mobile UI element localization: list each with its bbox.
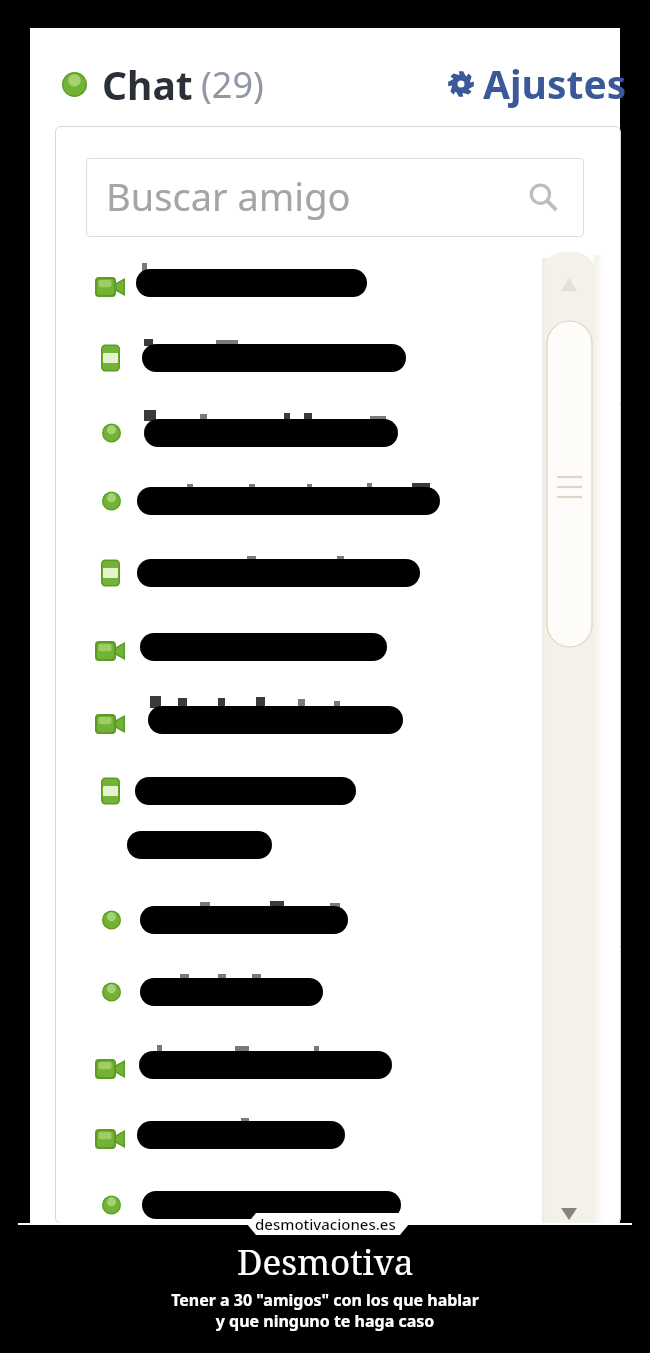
staticText: Tener a 30 "amigos" con los que hablar y…: [171, 1289, 479, 1332]
button[interactable]: Chat 1: [88, 247, 528, 309]
button[interactable]: Chat 8: [88, 755, 528, 817]
button[interactable]: Chat 12: [88, 1029, 528, 1091]
button[interactable]: Chat 14: [88, 1169, 528, 1231]
staticText: Chat: [102, 58, 193, 111]
button[interactable]: Buscar amigo: [86, 158, 584, 237]
staticText: desmotivaciones.es: [255, 1214, 396, 1234]
button[interactable]: Chat 13: [88, 1099, 528, 1161]
button[interactable]: Chat 11: [88, 956, 528, 1018]
button[interactable]: Chat 4: [88, 465, 528, 527]
button[interactable]: Chat 9: [88, 825, 528, 865]
staticText: Desmotiva: [237, 1238, 414, 1286]
button[interactable]: Ajustes: [448, 57, 627, 110]
button[interactable]: Chat 2: [88, 322, 528, 384]
staticText: Buscar amigo: [106, 170, 351, 222]
staticText: (29): [201, 60, 264, 109]
button[interactable]: Chat 7: [88, 684, 528, 746]
staticText: Ajustes: [483, 57, 627, 110]
button[interactable]: Chat 3: [88, 397, 528, 459]
button[interactable]: Chat 10: [88, 884, 528, 946]
button[interactable]: Chat: [62, 58, 264, 111]
button[interactable]: Chat 5: [88, 537, 528, 599]
button[interactable]: Chat 6: [88, 611, 528, 673]
